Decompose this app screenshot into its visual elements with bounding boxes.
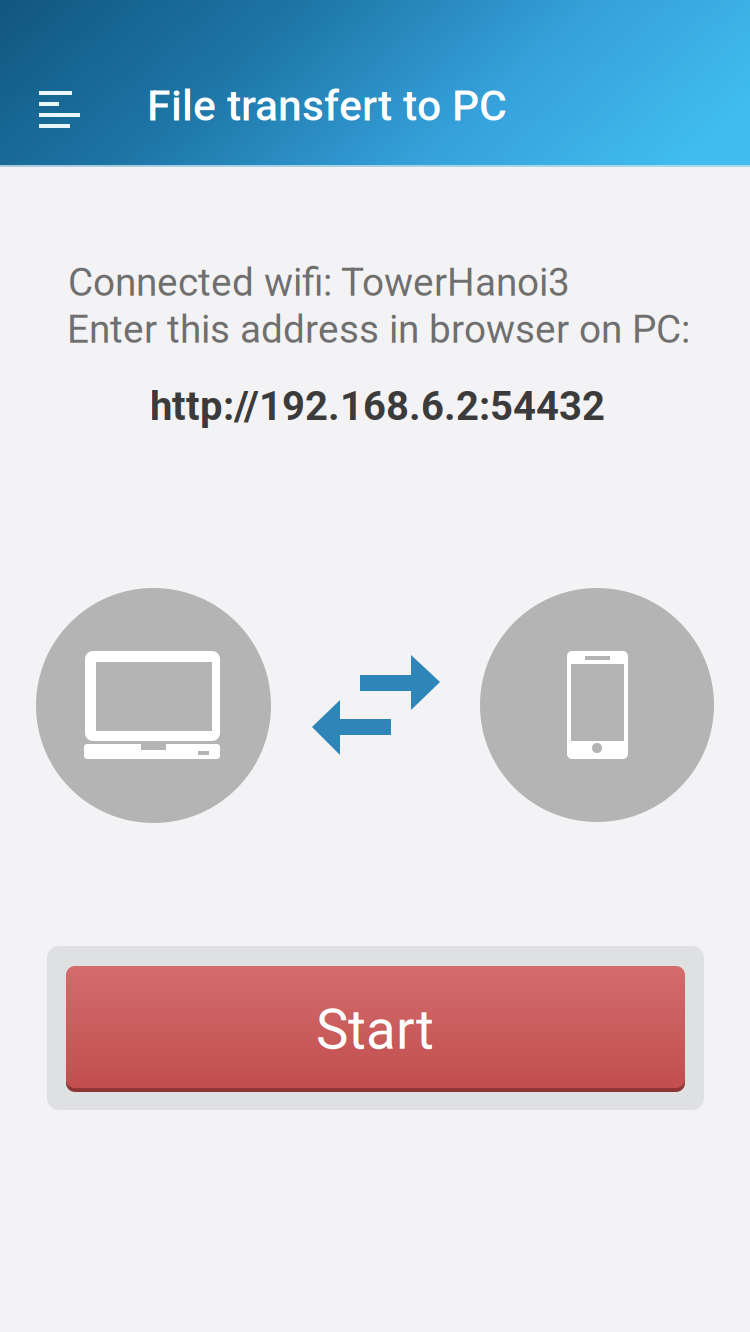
button[interactable]: Start	[47, 946, 704, 1110]
staticText: http://192.168.6.2:54432	[150, 383, 605, 430]
staticText: File transfert to PC	[147, 81, 507, 131]
staticText: Enter this address in browser on PC:	[67, 307, 690, 352]
button[interactable]: Menu	[0, 0, 118, 167]
staticText: Start	[316, 998, 434, 1062]
staticText: Connected wifi: TowerHanoi3	[68, 260, 570, 305]
